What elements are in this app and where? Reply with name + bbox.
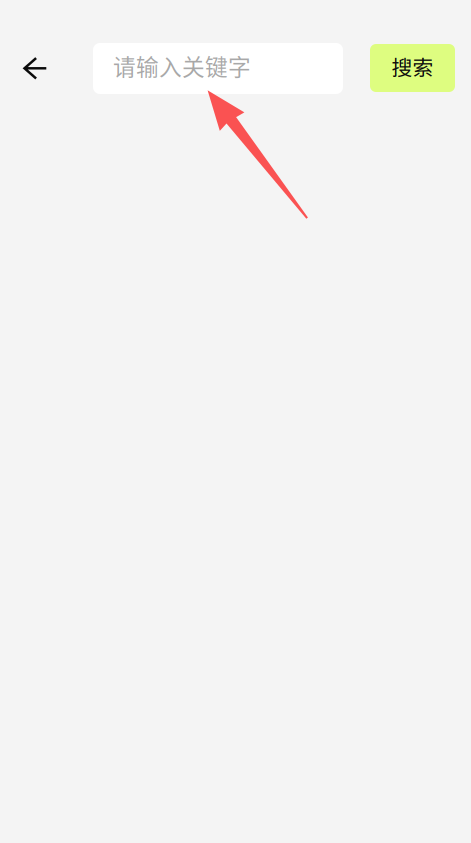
- button[interactable]: Back: [13, 46, 57, 90]
- button[interactable]: 请输入关键字: [93, 43, 343, 94]
- staticText: 搜索: [391, 51, 433, 81]
- staticText: 请输入关键字: [113, 49, 251, 82]
- button[interactable]: 搜索: [370, 44, 455, 92]
